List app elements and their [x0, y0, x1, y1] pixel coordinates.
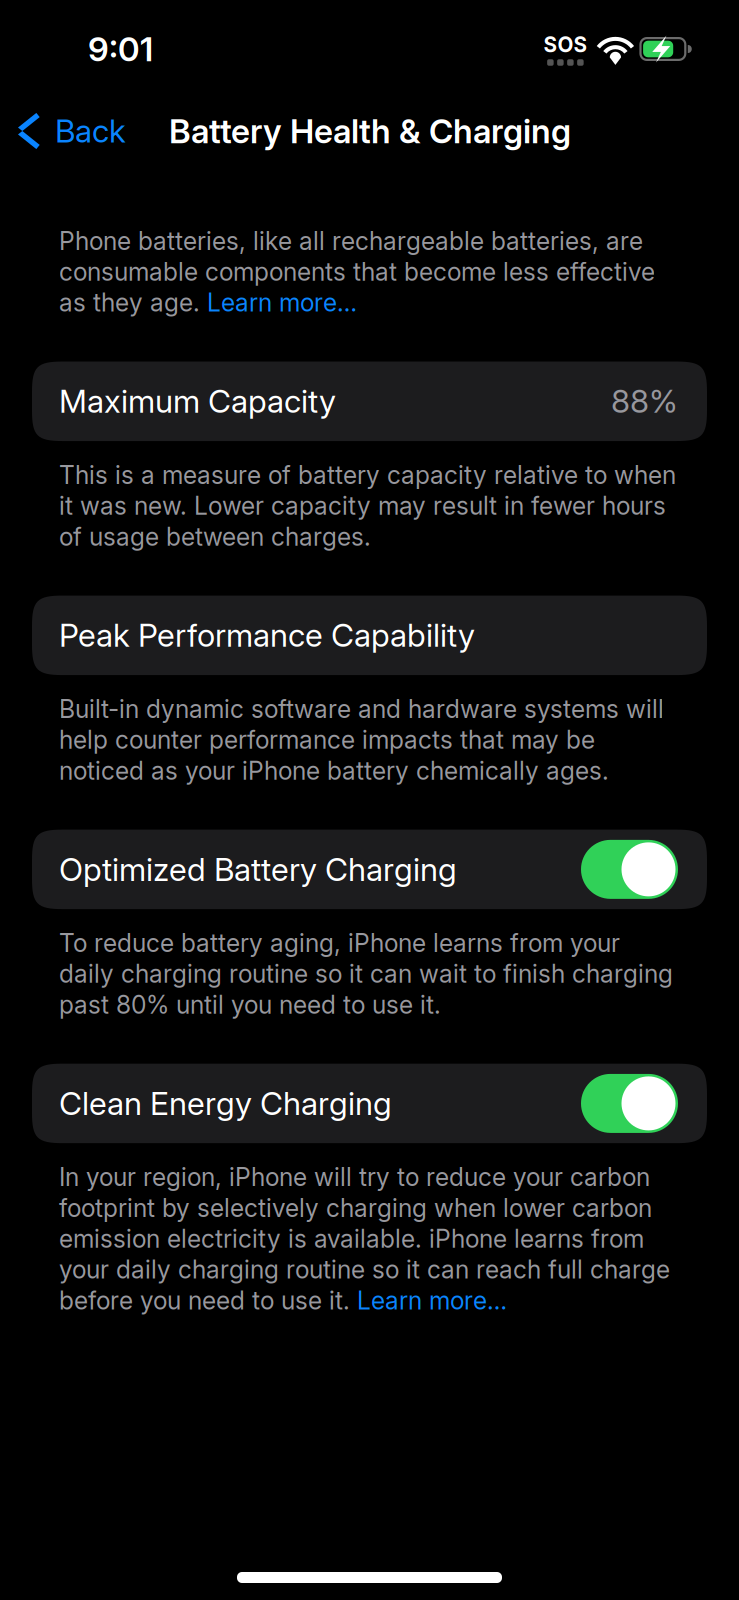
button[interactable]: Optimized Battery Charging: [32, 830, 707, 909]
staticText: Learn more…: [357, 1285, 507, 1315]
staticText: noticed as your iPhone battery chemicall…: [59, 756, 609, 786]
staticText: your daily charging routine so it can re…: [59, 1255, 670, 1284]
staticText: Clean Energy Charging: [59, 1084, 392, 1123]
staticText: help counter performance impacts that ma…: [59, 725, 595, 755]
staticText: past 80% until you need to use it.: [59, 990, 441, 1020]
staticText: Peak Performance Capability: [59, 616, 475, 654]
staticText: before you need to use it.: [59, 1285, 357, 1315]
staticText: it was new. Lower capacity may result in…: [59, 491, 666, 521]
staticText: Battery Health & Charging: [169, 111, 571, 151]
staticText: 88%: [611, 382, 678, 420]
staticText: of usage between charges.: [59, 522, 371, 551]
staticText: Learn more…: [207, 288, 357, 317]
button[interactable]: Learn more…: [357, 1285, 507, 1315]
staticText: as they age.: [59, 288, 207, 317]
button[interactable]: Maximum Capacity: [32, 361, 707, 441]
staticText: 9:01: [88, 29, 153, 69]
staticText: In your region, iPhone will try to reduc…: [59, 1162, 650, 1192]
staticText: Optimized Battery Charging: [59, 850, 457, 889]
staticText: Maximum Capacity: [59, 382, 336, 420]
staticText: Phone batteries, like all rechargeable b…: [59, 226, 643, 256]
staticText: SOS: [543, 32, 587, 57]
staticText: To reduce battery aging, iPhone learns f…: [59, 928, 620, 958]
staticText: daily charging routine so it can wait to…: [59, 959, 673, 989]
button[interactable]: Peak Performance Capability: [32, 596, 707, 675]
staticText: This is a measure of battery capacity re…: [59, 460, 676, 490]
staticText: Built-in dynamic software and hardware s…: [59, 694, 664, 724]
button[interactable]: Clean Energy Charging: [32, 1064, 707, 1143]
staticText: footprint by selectively charging when l…: [59, 1193, 652, 1223]
button[interactable]: Back: [0, 98, 136, 164]
button[interactable]: Learn more…: [207, 288, 357, 317]
staticText: consumable components that become less e…: [59, 257, 655, 287]
staticText: emission electricity is available. iPhon…: [59, 1224, 644, 1254]
staticText: Back: [55, 112, 126, 150]
